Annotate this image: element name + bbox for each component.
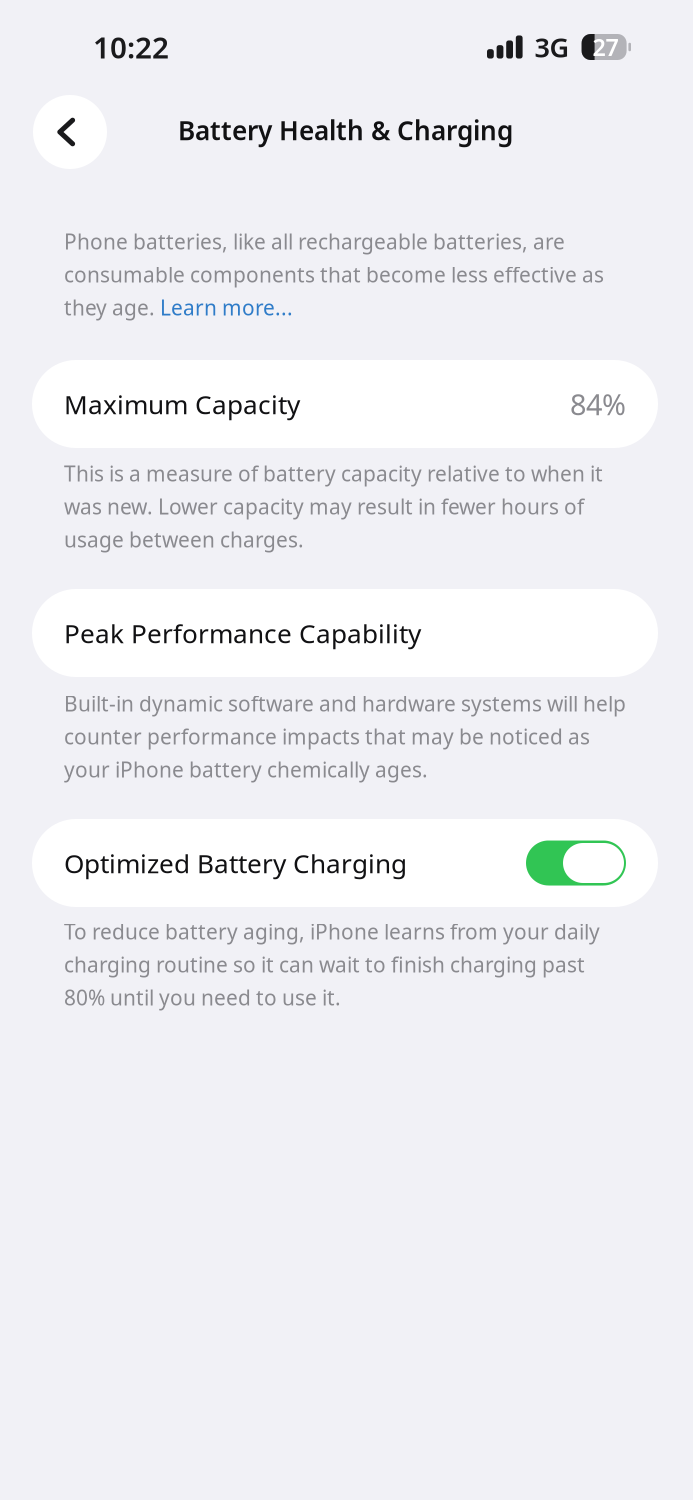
staticText: they age. [64,293,160,322]
staticText: This is a measure of battery capacity re… [64,459,603,488]
staticText: usage between charges. [64,525,304,554]
button[interactable]: Back [33,94,107,170]
staticText: consumable components that become less e… [64,260,604,289]
staticText: Learn more... [160,293,293,322]
staticText: was new. Lower capacity may result in fe… [64,492,584,521]
button[interactable]: Optimized Battery Charging [32,819,658,907]
staticText: Battery Health & Charging [178,112,513,148]
staticText: charging routine so it can wait to finis… [64,950,585,979]
staticText: Phone batteries, like all rechargeable b… [64,227,565,256]
staticText: 80% until you need to use it. [64,983,341,1012]
staticText: 27 [593,31,619,63]
button[interactable]: Peak Performance Capability [32,589,658,677]
staticText: Built-in dynamic software and hardware s… [64,689,626,718]
staticText: Optimized Battery Charging [64,845,407,881]
staticText: counter performance impacts that may be … [64,722,590,751]
staticText: Peak Performance Capability [64,615,421,651]
button[interactable]: Learn more... [160,293,293,322]
staticText: Maximum Capacity [64,386,300,422]
staticText: 84% [570,384,626,424]
staticText: 3G [535,29,570,65]
staticText: To reduce battery aging, iPhone learns f… [64,917,600,946]
staticText: 10:22 [93,27,169,67]
staticText: your iPhone battery chemically ages. [64,755,428,784]
button[interactable]: Maximum Capacity [32,360,658,448]
